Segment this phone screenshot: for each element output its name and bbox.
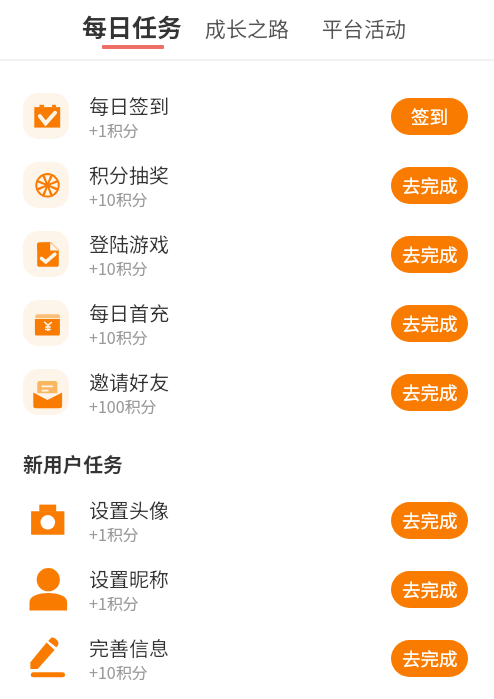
button[interactable]: 去完成 <box>391 640 468 677</box>
button[interactable]: 每日任务 <box>82 8 183 49</box>
staticText: 平台活动 <box>322 13 406 43</box>
button[interactable]: 平台活动 <box>322 13 406 43</box>
button[interactable]: 登陆游戏 <box>0 220 494 289</box>
staticText: 登陆游戏 <box>89 229 169 258</box>
button[interactable]: 设置昵称 <box>0 555 494 624</box>
staticText: +10积分 <box>89 325 148 348</box>
button[interactable]: 每日签到 <box>0 82 494 151</box>
staticText: 完善信息 <box>89 633 169 662</box>
button[interactable]: 去完成 <box>391 571 468 608</box>
staticText: 成长之路 <box>205 13 289 43</box>
staticText: +1积分 <box>89 522 139 545</box>
staticText: 去完成 <box>402 379 458 406</box>
staticText: 设置昵称 <box>89 564 169 593</box>
staticText: 去完成 <box>402 645 458 672</box>
button[interactable]: 去完成 <box>391 305 468 342</box>
button[interactable]: 积分抽奖 <box>0 151 494 220</box>
button[interactable]: 设置头像 <box>0 486 494 555</box>
staticText: +1积分 <box>89 591 139 614</box>
staticText: 签到 <box>411 103 449 130</box>
button[interactable]: 成长之路 <box>205 13 289 43</box>
staticText: 新用户任务 <box>23 449 123 478</box>
button[interactable]: 签到 <box>391 98 468 135</box>
staticText: +10积分 <box>89 660 148 683</box>
staticText: 每日任务 <box>82 8 183 44</box>
button[interactable]: 去完成 <box>391 374 468 411</box>
button[interactable]: 去完成 <box>391 502 468 539</box>
staticText: +1积分 <box>89 118 139 141</box>
staticText: 去完成 <box>402 241 458 268</box>
staticText: 积分抽奖 <box>89 160 169 189</box>
staticText: +100积分 <box>89 394 157 417</box>
button[interactable]: 去完成 <box>391 236 468 273</box>
staticText: 邀请好友 <box>89 367 169 396</box>
staticText: 去完成 <box>402 507 458 534</box>
staticText: +10积分 <box>89 187 148 210</box>
staticText: 去完成 <box>402 172 458 199</box>
button[interactable]: 每日首充 <box>0 289 494 358</box>
button[interactable]: 邀请好友 <box>0 358 494 427</box>
button[interactable]: 完善信息 <box>0 624 494 693</box>
button[interactable]: 去完成 <box>391 167 468 204</box>
staticText: 设置头像 <box>89 495 169 524</box>
staticText: +10积分 <box>89 256 148 279</box>
staticText: 去完成 <box>402 576 458 603</box>
staticText: 去完成 <box>402 310 458 337</box>
staticText: 每日签到 <box>89 91 169 120</box>
staticText: 每日首充 <box>89 298 169 327</box>
